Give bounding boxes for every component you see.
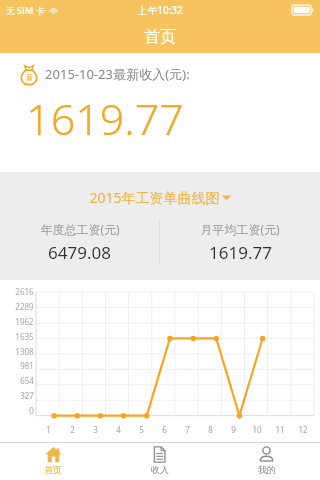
staticText: 年度总工资(元): [40, 221, 120, 237]
button[interactable]: 收入: [106, 443, 213, 475]
staticText: 1635: [15, 331, 34, 342]
staticText: 首页: [144, 27, 176, 47]
staticText: 3: [93, 424, 98, 435]
button[interactable]: 我的: [213, 443, 320, 475]
staticText: 981: [20, 360, 34, 371]
staticText: 0: [29, 405, 34, 416]
button[interactable]: 首页: [0, 443, 106, 475]
staticText: 2015年工资单曲线图: [89, 188, 220, 207]
staticText: 2: [70, 424, 75, 435]
other: 我的: [258, 446, 275, 463]
staticText: 1619.77: [209, 241, 272, 264]
staticText: 1962: [15, 316, 34, 327]
staticText: 327: [20, 390, 34, 401]
staticText: 首页: [44, 464, 62, 475]
staticText: 8: [208, 424, 213, 435]
staticText: 1: [46, 424, 51, 435]
staticText: 6479.08: [48, 241, 111, 264]
staticText: 10: [252, 424, 262, 435]
staticText: 2616: [15, 286, 34, 297]
staticText: 月平均工资(元): [200, 221, 280, 237]
staticText: 收入: [151, 464, 169, 475]
staticText: 6: [162, 424, 167, 435]
other: 收入: [151, 446, 168, 463]
staticText: 12: [298, 424, 308, 435]
staticText: 5: [139, 424, 144, 435]
staticText: 11: [275, 424, 285, 435]
staticText: 上午10:32: [137, 3, 183, 17]
staticText: 2289: [15, 301, 34, 312]
staticText: 4: [116, 424, 121, 435]
staticText: 最新收入(元):: [113, 65, 190, 83]
staticText: 1308: [15, 346, 34, 357]
staticText: 7: [185, 424, 190, 435]
staticText: 无 SIM 卡: [5, 4, 45, 16]
button[interactable]: 2015年工资单曲线图: [0, 188, 320, 207]
staticText: 9: [231, 424, 236, 435]
staticText: 1619.77: [26, 89, 184, 148]
staticText: 我的: [258, 464, 276, 475]
other: 首页: [45, 446, 62, 463]
staticText: 2015-10-23: [45, 65, 113, 83]
staticText: 薪: [26, 73, 33, 82]
staticText: 654: [20, 375, 34, 386]
